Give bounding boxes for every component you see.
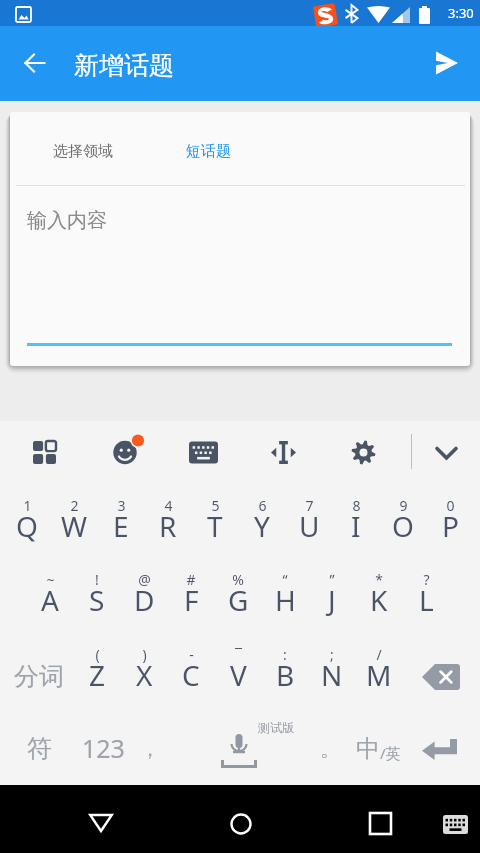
button[interactable]: Recents [356, 799, 404, 847]
staticText: ( [95, 645, 100, 664]
staticText: A [41, 581, 59, 619]
button[interactable]: 2 [51, 483, 97, 551]
button[interactable]: Keyboard layouts [22, 430, 66, 474]
staticText: L [419, 581, 434, 619]
staticText: 。 [320, 737, 340, 762]
button[interactable]: Hide keyboard [424, 430, 468, 474]
button[interactable]: ) [121, 632, 167, 700]
button[interactable]: 输入内容 [10, 186, 470, 366]
staticText: / [376, 645, 382, 664]
button[interactable]: * [356, 557, 402, 625]
staticText: 短话题 [186, 142, 231, 161]
staticText: 选择领域 [53, 142, 113, 161]
button[interactable]: / [356, 632, 402, 700]
button[interactable]: 6 [239, 483, 285, 551]
button[interactable]: 8 [333, 483, 379, 551]
staticText: ” [329, 570, 335, 589]
button[interactable]: 1 [4, 483, 50, 551]
button[interactable]: Keyboard [181, 430, 225, 474]
staticText: Y [254, 507, 270, 545]
button[interactable]: 选择领域 [10, 112, 470, 186]
button[interactable]: Backspace [410, 643, 472, 711]
button[interactable]: 4 [145, 483, 191, 551]
button[interactable]: ~ [27, 557, 73, 625]
button[interactable]: ! [74, 557, 120, 625]
staticText: 输入内容 [27, 208, 107, 233]
staticText: O [392, 507, 414, 545]
button[interactable]: 9 [380, 483, 426, 551]
staticText: E [113, 507, 129, 545]
button[interactable]: 分词 [6, 643, 74, 711]
button[interactable]: Home [217, 800, 265, 848]
button[interactable]: ? [403, 557, 449, 625]
staticText: G [228, 581, 249, 619]
staticText: ! [95, 570, 99, 589]
staticText: 0 [446, 496, 455, 515]
staticText: ? [423, 570, 430, 589]
staticText: 4 [164, 496, 173, 515]
staticText: ¯ [235, 645, 242, 664]
staticText: 6 [258, 496, 267, 515]
staticText: T [207, 507, 223, 545]
staticText: K [370, 581, 388, 619]
staticText: 3:30 [448, 4, 474, 22]
button[interactable]: Space [182, 713, 296, 785]
staticText: M [366, 656, 392, 694]
staticText: Q [16, 507, 38, 545]
staticText: 中 [356, 734, 380, 764]
staticText: U [299, 507, 320, 545]
button[interactable]: 123 [70, 713, 136, 785]
button[interactable]: Switch keyboard [434, 803, 476, 845]
staticText: N [321, 656, 343, 694]
staticText: # [186, 570, 196, 589]
button[interactable]: Move cursor [261, 430, 305, 474]
staticText: 8 [352, 496, 361, 515]
staticText: 5 [211, 496, 220, 515]
button[interactable]: Enter [407, 713, 471, 785]
staticText: : [283, 645, 287, 664]
button[interactable]: Emoji [103, 430, 147, 474]
staticText: 123 [82, 731, 125, 765]
button[interactable]: Back [12, 40, 58, 86]
button[interactable]: 中 [348, 713, 408, 785]
staticText: ~ [46, 570, 55, 589]
staticText: B [276, 656, 295, 694]
button[interactable]: Settings [341, 430, 385, 474]
button[interactable]: % [215, 557, 261, 625]
staticText: 7 [305, 496, 314, 515]
button[interactable]: # [168, 557, 214, 625]
button[interactable]: “ [262, 557, 308, 625]
staticText: 2 [70, 496, 79, 515]
staticText: * [375, 570, 383, 589]
staticText: @ [138, 570, 151, 589]
button[interactable]: 7 [286, 483, 332, 551]
staticText: X [136, 656, 153, 694]
button[interactable]: ” [309, 557, 355, 625]
button[interactable]: 3 [98, 483, 144, 551]
staticText: - [189, 645, 194, 664]
button[interactable]: Send [424, 40, 470, 86]
button[interactable]: - [168, 632, 214, 700]
staticText: Z [89, 656, 106, 694]
staticText: H [275, 581, 296, 619]
staticText: 9 [399, 496, 408, 515]
staticText: 符 [27, 733, 52, 764]
button[interactable]: @ [121, 557, 167, 625]
button[interactable]: ¯ [215, 632, 261, 700]
button[interactable]: Back [77, 799, 125, 847]
staticText: /英 [380, 743, 401, 763]
staticText: % [232, 570, 244, 589]
button[interactable]: 。 [307, 713, 353, 785]
button[interactable]: : [262, 632, 308, 700]
button[interactable]: ; [309, 632, 355, 700]
button[interactable]: 5 [192, 483, 238, 551]
button[interactable]: ( [74, 632, 120, 700]
button[interactable]: ， [128, 713, 172, 785]
staticText: 1 [23, 496, 32, 515]
staticText: “ [282, 570, 288, 589]
staticText: P [442, 507, 459, 545]
staticText: ; [330, 645, 334, 664]
button[interactable]: 0 [427, 483, 473, 551]
button[interactable]: 符 [6, 713, 70, 785]
staticText: W [61, 507, 88, 545]
